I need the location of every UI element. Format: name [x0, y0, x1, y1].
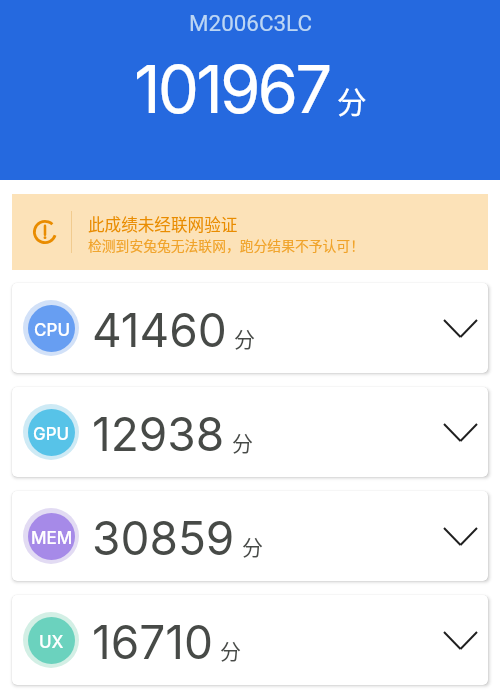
button[interactable]: Expand details: [440, 412, 480, 452]
button[interactable]: UX: [12, 595, 488, 685]
button[interactable]: 此成绩未经联网验证: [12, 194, 488, 270]
staticText: 101967: [134, 50, 330, 129]
staticText: 分: [234, 323, 255, 353]
staticText: 检测到安兔兔无法联网，跑分结果不予认可！: [88, 235, 364, 255]
staticText: GPU: [33, 424, 70, 445]
staticText: 16710: [92, 614, 213, 670]
staticText: 12938: [92, 406, 225, 462]
staticText: 分: [242, 531, 263, 561]
button[interactable]: GPU: [12, 387, 488, 477]
staticText: UX: [39, 632, 64, 653]
staticText: 分: [337, 79, 367, 122]
staticText: 30859: [92, 510, 235, 566]
staticText: 41460: [92, 302, 227, 358]
button[interactable]: MEM: [12, 491, 488, 581]
button[interactable]: Expand details: [440, 308, 480, 348]
staticText: MEM: [31, 528, 73, 549]
staticText: 分: [232, 427, 253, 457]
staticText: M2006C3LC: [189, 10, 312, 36]
staticText: 分: [220, 635, 241, 665]
button[interactable]: Expand details: [440, 516, 480, 556]
button[interactable]: Expand details: [440, 620, 480, 660]
button[interactable]: CPU: [12, 283, 488, 373]
staticText: CPU: [34, 320, 70, 341]
staticText: 此成绩未经联网验证: [88, 212, 238, 236]
